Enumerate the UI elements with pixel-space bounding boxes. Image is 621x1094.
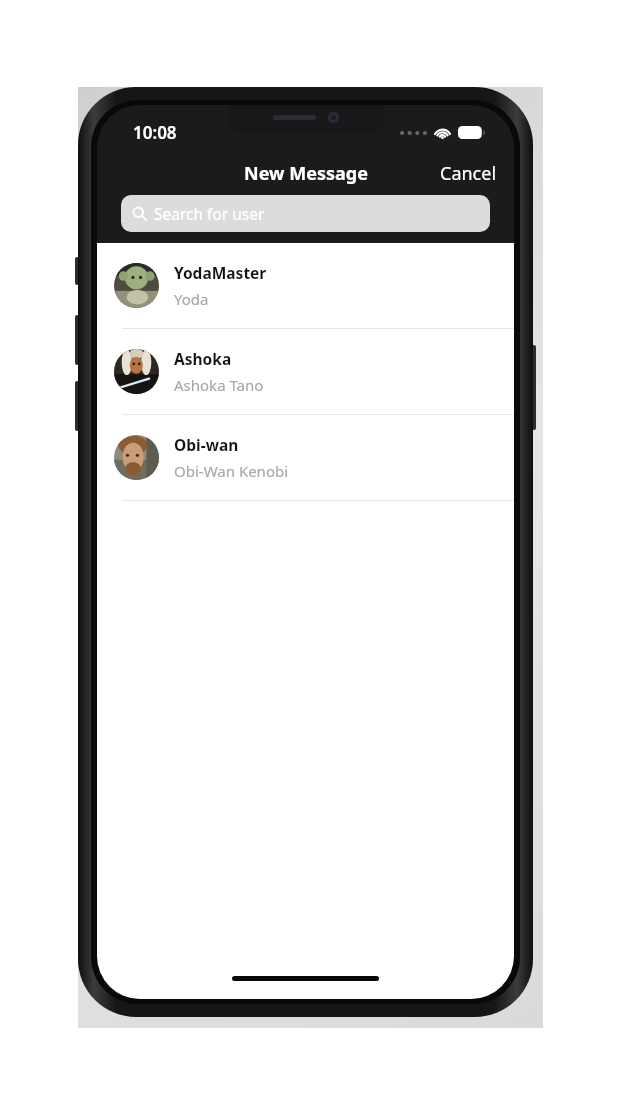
button[interactable]: Cancel	[423, 153, 514, 194]
staticText: Search for user	[154, 203, 265, 224]
staticText: New Message	[244, 161, 368, 186]
button[interactable]: Ashoka	[97, 329, 514, 415]
button[interactable]: YodaMaster	[97, 243, 514, 329]
staticText: Cancel	[440, 161, 497, 186]
staticText: Obi-wan	[174, 434, 239, 455]
staticText: YodaMaster	[174, 262, 267, 283]
staticText: Yoda	[174, 289, 209, 309]
staticText: Ashoka Tano	[174, 375, 264, 395]
button[interactable]: Obi-wan	[97, 415, 514, 501]
staticText: Ashoka	[174, 348, 232, 369]
staticText: Obi-Wan Kenobi	[174, 461, 289, 481]
staticText: 10:08	[133, 121, 177, 144]
button[interactable]: Search for user	[121, 195, 490, 232]
